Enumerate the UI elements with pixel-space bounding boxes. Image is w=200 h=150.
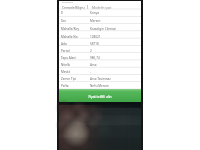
button[interactable]: Zemin Tipi — [59, 75, 141, 82]
button[interactable]: Cerezde Bilgisi — [59, 4, 87, 9]
staticText: 2 — [90, 49, 92, 53]
staticText: Ada — [61, 42, 67, 46]
button[interactable]: Tapu Alani — [59, 54, 141, 61]
staticText: Fiyat teklifi alin — [88, 94, 112, 98]
button[interactable]: Mahalle No — [59, 33, 141, 40]
staticText: 128021 — [90, 35, 101, 39]
staticText: Konya — [90, 11, 100, 15]
button[interactable]: Pafta — [59, 82, 141, 89]
staticText: Arsa Tasinmaz — [90, 77, 111, 81]
button[interactable]: Fiyat teklifi alin — [59, 89, 141, 102]
button[interactable]: Modelin yazi — [88, 4, 141, 9]
staticText: Nitelik — [61, 63, 71, 67]
staticText: Parsel — [61, 49, 70, 53]
staticText: Cerezde Bilgisi — [62, 5, 85, 9]
staticText: Zemin Tipi — [61, 77, 77, 81]
staticText: Tapu Alani — [61, 56, 77, 60]
staticText: Il — [61, 11, 63, 15]
button[interactable]: Ilce — [59, 17, 141, 25]
staticText: 986,74 — [90, 56, 100, 60]
button[interactable]: Mahalle/Koy — [59, 25, 141, 33]
button[interactable]: Nitelik — [59, 61, 141, 68]
staticText: Ilce — [61, 19, 67, 23]
staticText: - — [90, 70, 91, 74]
staticText: Mahalle No — [61, 35, 78, 39]
button[interactable]: Mevkii — [59, 68, 141, 75]
staticText: Mevkii — [61, 70, 71, 74]
staticText: Arsa — [90, 63, 97, 67]
button[interactable]: Il — [59, 9, 141, 17]
staticText: Karadigin Cikmazi — [90, 27, 117, 31]
staticText: Pafta — [61, 84, 69, 88]
staticText: 58718 — [90, 42, 99, 46]
staticText: Mahalle/Koy — [61, 27, 79, 31]
staticText: TASINMAZ — [62, 1, 73, 4]
button[interactable]: Ada — [59, 40, 141, 47]
staticText: Meram — [90, 19, 101, 23]
staticText: Modelin yazi — [92, 5, 112, 9]
staticText: Nefsi Meram — [90, 84, 109, 88]
button[interactable]: Parsel — [59, 47, 141, 54]
